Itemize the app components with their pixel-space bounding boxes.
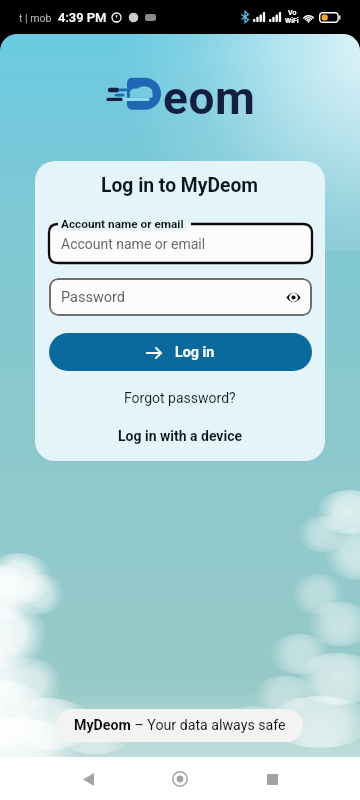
staticText: MyDeom <box>74 717 131 734</box>
staticText: Forgot password? <box>124 390 236 406</box>
staticText: WiFi <box>285 17 299 25</box>
staticText: Account name or email <box>61 217 184 231</box>
staticText: Log in with a device <box>118 428 243 444</box>
staticText: eom <box>163 71 256 125</box>
button[interactable]: Password <box>49 278 312 316</box>
staticText: Log in to MyDeom <box>101 174 259 197</box>
button[interactable]: Forgot password? <box>118 385 242 411</box>
staticText: Vo <box>288 9 297 17</box>
button[interactable]: Back <box>71 762 105 796</box>
staticText: Password <box>61 289 126 306</box>
button[interactable]: Log in <box>49 333 312 371</box>
staticText: 4:39 PM <box>58 10 107 25</box>
button[interactable]: Home <box>163 762 197 796</box>
staticText: – Your data always safe <box>131 717 286 734</box>
button[interactable]: Show password <box>282 286 304 308</box>
staticText: t | mob <box>19 12 52 24</box>
staticText: Log in <box>175 344 215 361</box>
button[interactable]: Recent apps <box>255 762 289 796</box>
button[interactable]: Log in with a device <box>112 423 249 449</box>
button[interactable]: MyDeom <box>56 709 303 742</box>
staticText: Account name or email <box>61 236 206 252</box>
